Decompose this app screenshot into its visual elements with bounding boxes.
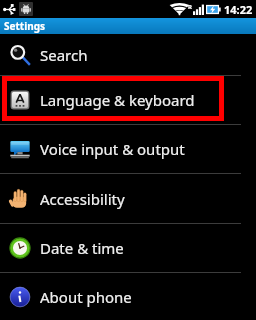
button[interactable]: Language & keyboard: [0, 76, 256, 124]
staticText: Accessibility: [40, 189, 125, 209]
button[interactable]: About phone: [0, 273, 256, 320]
staticText: Date & time: [40, 238, 124, 258]
button[interactable]: Voice input & output: [0, 125, 256, 173]
staticText: 14:22: [224, 2, 253, 17]
staticText: Settings: [4, 19, 45, 33]
staticText: R: [188, 3, 192, 11]
staticText: Language & keyboard: [40, 90, 195, 110]
staticText: Search: [40, 45, 88, 65]
button[interactable]: Accessibility: [0, 174, 256, 223]
button[interactable]: Date & time: [0, 224, 256, 272]
staticText: Voice input & output: [40, 139, 185, 159]
staticText: About phone: [40, 287, 132, 307]
button[interactable]: Search: [0, 34, 256, 75]
